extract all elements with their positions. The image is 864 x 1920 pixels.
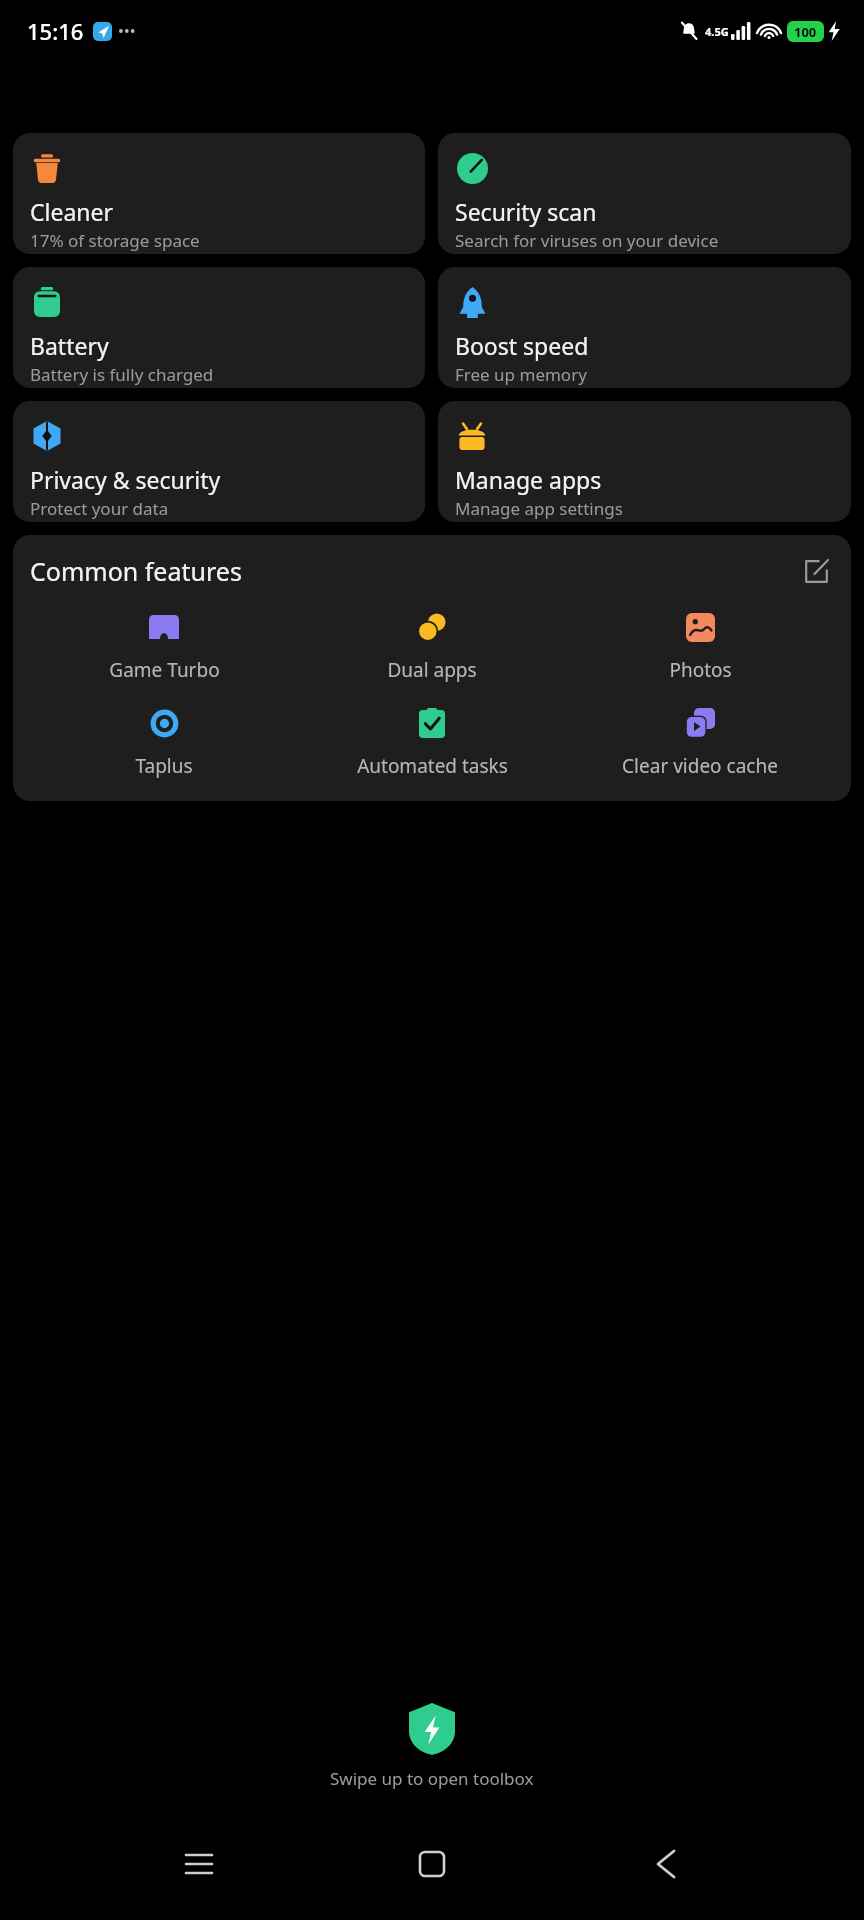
staticText: Common features <box>30 554 242 588</box>
button[interactable]: Privacy & security <box>13 401 425 522</box>
staticText: 15:16 <box>27 16 84 46</box>
button[interactable]: Photos <box>566 607 834 683</box>
button[interactable]: Open toolbox <box>402 1699 462 1759</box>
button[interactable]: Home <box>397 1834 467 1894</box>
staticText: 4.5G <box>705 24 729 39</box>
staticText: Protect your data <box>30 497 169 520</box>
button[interactable]: Security scan <box>438 133 851 254</box>
button[interactable]: Recents <box>164 1834 234 1894</box>
staticText: Privacy & security <box>30 464 221 495</box>
button[interactable]: Edit <box>798 553 834 589</box>
staticText: Search for viruses on your device <box>455 229 719 252</box>
button[interactable]: Back <box>631 1834 701 1894</box>
button[interactable]: Game Turbo <box>30 607 298 683</box>
staticText: 17% of storage space <box>30 229 200 252</box>
staticText: Clear video cache <box>622 753 778 779</box>
staticText: Security scan <box>455 196 597 227</box>
staticText: Manage apps <box>455 464 602 495</box>
staticText: Free up memory <box>455 363 587 386</box>
staticText: Automated tasks <box>357 753 508 779</box>
button[interactable]: Dual apps <box>298 607 566 683</box>
button[interactable]: Cleaner <box>13 133 425 254</box>
staticText: Game Turbo <box>109 657 220 683</box>
staticText: Swipe up to open toolbox <box>330 1767 534 1790</box>
staticText: Cleaner <box>30 196 114 227</box>
staticText: Taplus <box>135 753 193 779</box>
staticText: Manage app settings <box>455 497 623 520</box>
staticText: Battery <box>30 330 109 361</box>
button[interactable]: Battery <box>13 267 425 388</box>
staticText: Dual apps <box>387 657 477 683</box>
button[interactable]: Taplus <box>30 703 298 779</box>
staticText: Boost speed <box>455 330 589 361</box>
button[interactable]: Clear video cache <box>566 703 834 779</box>
staticText: Battery is fully charged <box>30 363 214 386</box>
button[interactable]: Boost speed <box>438 267 851 388</box>
staticText: Photos <box>669 657 732 683</box>
staticText: 100 <box>794 23 817 41</box>
button[interactable]: Manage apps <box>438 401 851 522</box>
button[interactable]: Automated tasks <box>298 703 566 779</box>
